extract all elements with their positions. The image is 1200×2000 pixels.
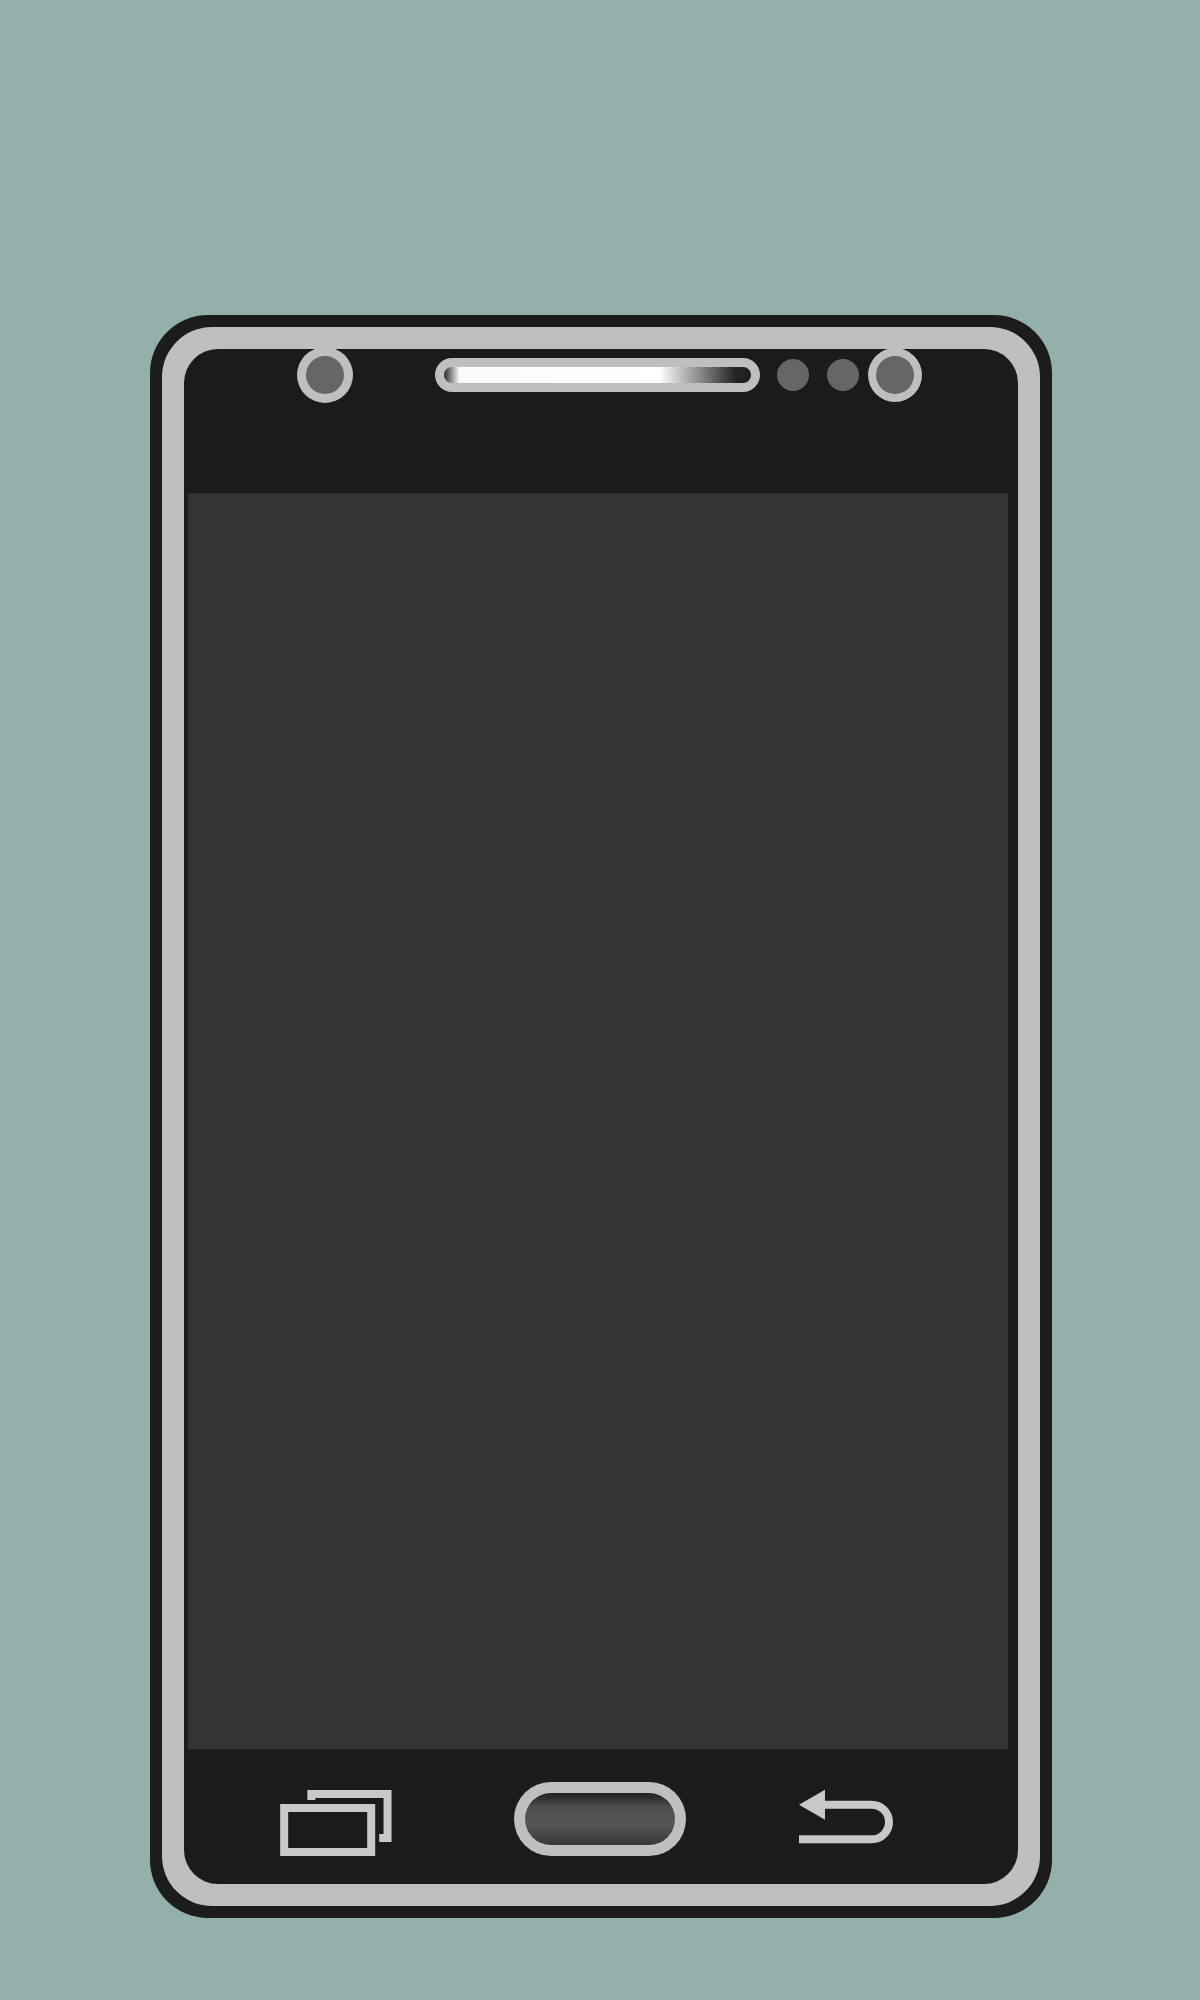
button[interactable]: Recent apps (276, 1772, 412, 1872)
button[interactable]: Home (508, 1776, 692, 1862)
button[interactable]: Back (778, 1768, 928, 1876)
